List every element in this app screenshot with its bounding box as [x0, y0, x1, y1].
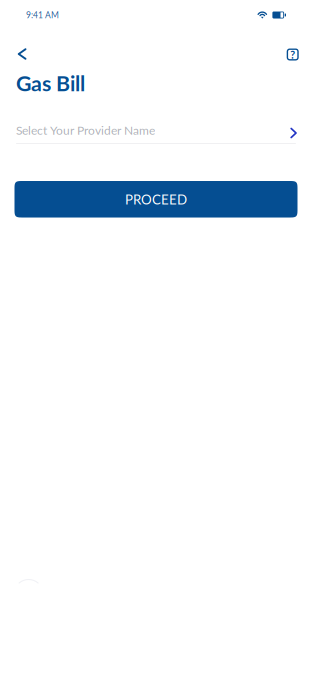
staticText: Gas Bill	[16, 70, 85, 96]
button[interactable]: Back	[18, 41, 44, 67]
button[interactable]: Select Your Provider Name	[16, 122, 296, 144]
button[interactable]: PROCEED	[14, 181, 297, 217]
button[interactable]: Help	[272, 41, 298, 67]
staticText: Select Your Provider Name	[16, 123, 155, 137]
staticText: 9:41 AM	[26, 10, 59, 20]
staticText: PROCEED	[125, 191, 187, 207]
staticText: ?	[290, 48, 295, 61]
